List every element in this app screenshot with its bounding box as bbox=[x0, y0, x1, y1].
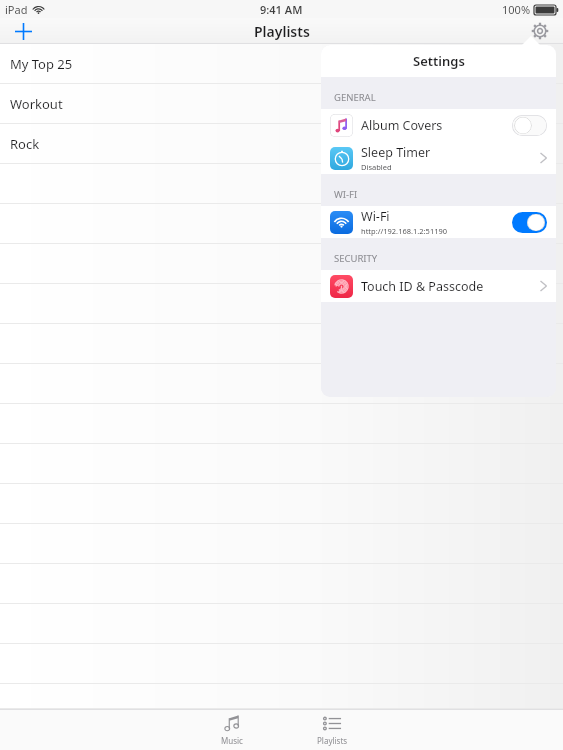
staticText: Playlists bbox=[254, 22, 310, 41]
button[interactable]: Wi-Fi bbox=[321, 206, 556, 238]
button[interactable]: Touch ID & Passcode bbox=[321, 270, 556, 302]
staticText: Disabled bbox=[361, 162, 392, 172]
staticText: GENERAL bbox=[334, 91, 376, 104]
button[interactable]: Settings bbox=[525, 18, 555, 44]
staticText: iPad bbox=[5, 2, 28, 17]
staticText: 9:41 AM bbox=[260, 2, 303, 17]
button[interactable]: Rock bbox=[0, 124, 563, 164]
button[interactable]: Playlists bbox=[302, 709, 362, 750]
staticText: Rock bbox=[10, 135, 40, 153]
button[interactable]: Workout bbox=[0, 84, 563, 124]
staticText: Music bbox=[221, 735, 243, 746]
button[interactable]: My Top 25 bbox=[0, 44, 563, 84]
staticText: Workout bbox=[10, 95, 63, 113]
staticText: Album Covers bbox=[361, 117, 443, 134]
staticText: Sleep Timer bbox=[361, 144, 431, 161]
button[interactable]: Add playlist bbox=[8, 18, 38, 44]
button[interactable]: Toggle off bbox=[512, 115, 547, 136]
staticText: Touch ID & Passcode bbox=[361, 278, 484, 295]
button[interactable]: Album Covers bbox=[321, 109, 556, 141]
staticText: WI-FI bbox=[334, 188, 358, 201]
staticText: 100% bbox=[502, 2, 531, 17]
staticText: SECURITY bbox=[334, 252, 378, 265]
staticText: Wi-Fi bbox=[361, 208, 390, 225]
button[interactable]: Toggle on bbox=[512, 212, 547, 233]
staticText: Playlists bbox=[317, 735, 348, 746]
button[interactable]: Music bbox=[202, 709, 262, 750]
staticText: Settings bbox=[413, 52, 465, 70]
staticText: http://192.168.1.2:51190 bbox=[361, 226, 448, 236]
staticText: My Top 25 bbox=[10, 55, 73, 73]
button[interactable]: Sleep Timer bbox=[321, 142, 556, 174]
